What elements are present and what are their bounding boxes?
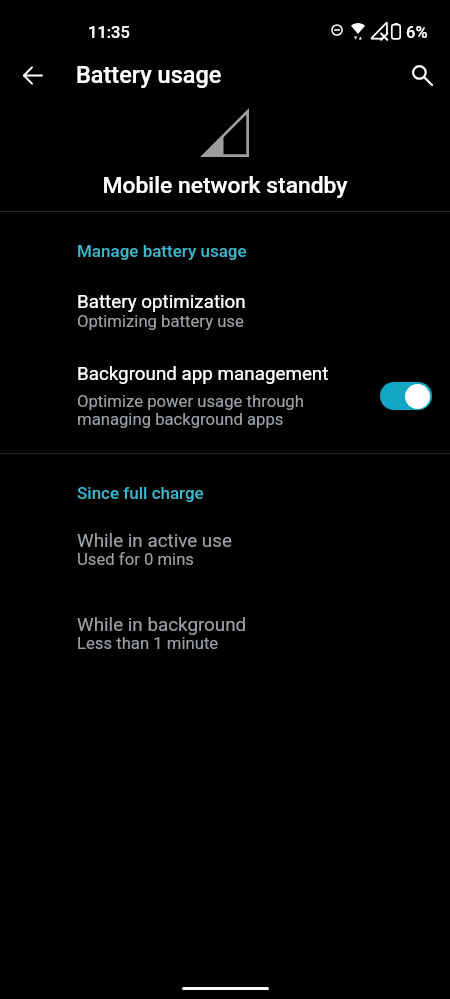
staticText: Battery optimization <box>77 291 246 313</box>
staticText: Background app management <box>77 363 329 385</box>
button[interactable]: Background app management toggle <box>380 382 432 410</box>
staticText: Since full charge <box>77 483 204 503</box>
staticText: Optimizing battery use <box>77 312 244 332</box>
staticText: Used for 0 mins <box>77 550 194 570</box>
staticText: 11:35 <box>88 23 130 42</box>
staticText: Optimize power usage through managing ba… <box>77 392 304 429</box>
button[interactable]: While in active use <box>0 514 450 584</box>
staticText: While in background <box>77 614 247 636</box>
staticText: 6% <box>406 23 428 42</box>
button[interactable]: Back <box>8 51 56 99</box>
staticText: Battery usage <box>76 61 222 89</box>
staticText: While in active use <box>77 530 232 552</box>
button[interactable]: Battery optimization <box>0 275 450 345</box>
staticText: Mobile network standby <box>102 172 348 199</box>
button[interactable]: Search <box>398 51 446 99</box>
staticText: Manage battery usage <box>77 241 247 261</box>
button[interactable]: While in background <box>0 598 450 668</box>
button[interactable]: Background app management <box>0 347 450 439</box>
staticText: Less than 1 minute <box>77 634 219 654</box>
